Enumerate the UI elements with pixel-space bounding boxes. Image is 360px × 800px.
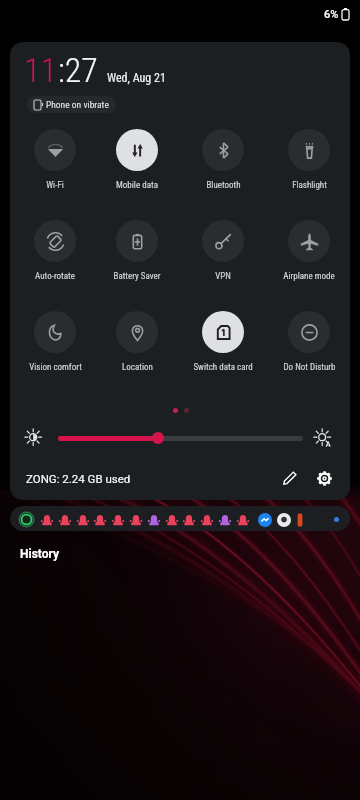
button[interactable]: Battery Saver <box>96 220 178 282</box>
staticText: Flashlight <box>292 180 327 191</box>
staticText: History <box>20 547 60 561</box>
staticText: Airplane mode <box>283 271 335 282</box>
staticText: Battery Saver <box>113 271 161 282</box>
button[interactable]: Location <box>96 311 178 373</box>
staticText: Vision comfort <box>29 362 82 373</box>
staticText: :27 <box>58 50 98 90</box>
staticText: Bluetooth <box>206 180 241 191</box>
button[interactable]: Auto-rotate <box>14 220 96 282</box>
staticText: Do Not Disturb <box>283 362 336 373</box>
staticText: 11 <box>24 50 58 90</box>
button[interactable]: VPN <box>182 220 264 282</box>
button[interactable]: Flashlight <box>268 129 350 191</box>
button[interactable]: Edit tiles <box>277 465 303 491</box>
staticText: ZONG: 2.24 GB used <box>26 472 131 485</box>
button[interactable] <box>10 506 350 531</box>
staticText: Mobile data <box>116 180 158 191</box>
button[interactable]: Do Not Disturb <box>268 311 350 373</box>
staticText: Auto-rotate <box>35 271 75 282</box>
staticText: VPN <box>215 271 231 282</box>
button[interactable]: Vision comfort <box>14 311 96 373</box>
button[interactable]: Mobile data <box>96 129 178 191</box>
button[interactable]: Settings <box>311 465 337 491</box>
staticText: Wi-Fi <box>46 180 64 191</box>
staticText: Location <box>122 362 153 373</box>
button[interactable]: Bluetooth <box>182 129 264 191</box>
staticText: Switch data card <box>193 362 253 373</box>
button[interactable]: Switch data card <box>182 311 264 373</box>
staticText: Phone on vibrate <box>46 99 109 110</box>
button[interactable]: Wi-Fi <box>14 129 96 191</box>
button[interactable]: Phone on vibrate <box>27 96 116 113</box>
button[interactable]: Airplane mode <box>268 220 350 282</box>
staticText: 6% <box>324 8 339 21</box>
staticText: Wed, Aug 21 <box>107 71 166 85</box>
